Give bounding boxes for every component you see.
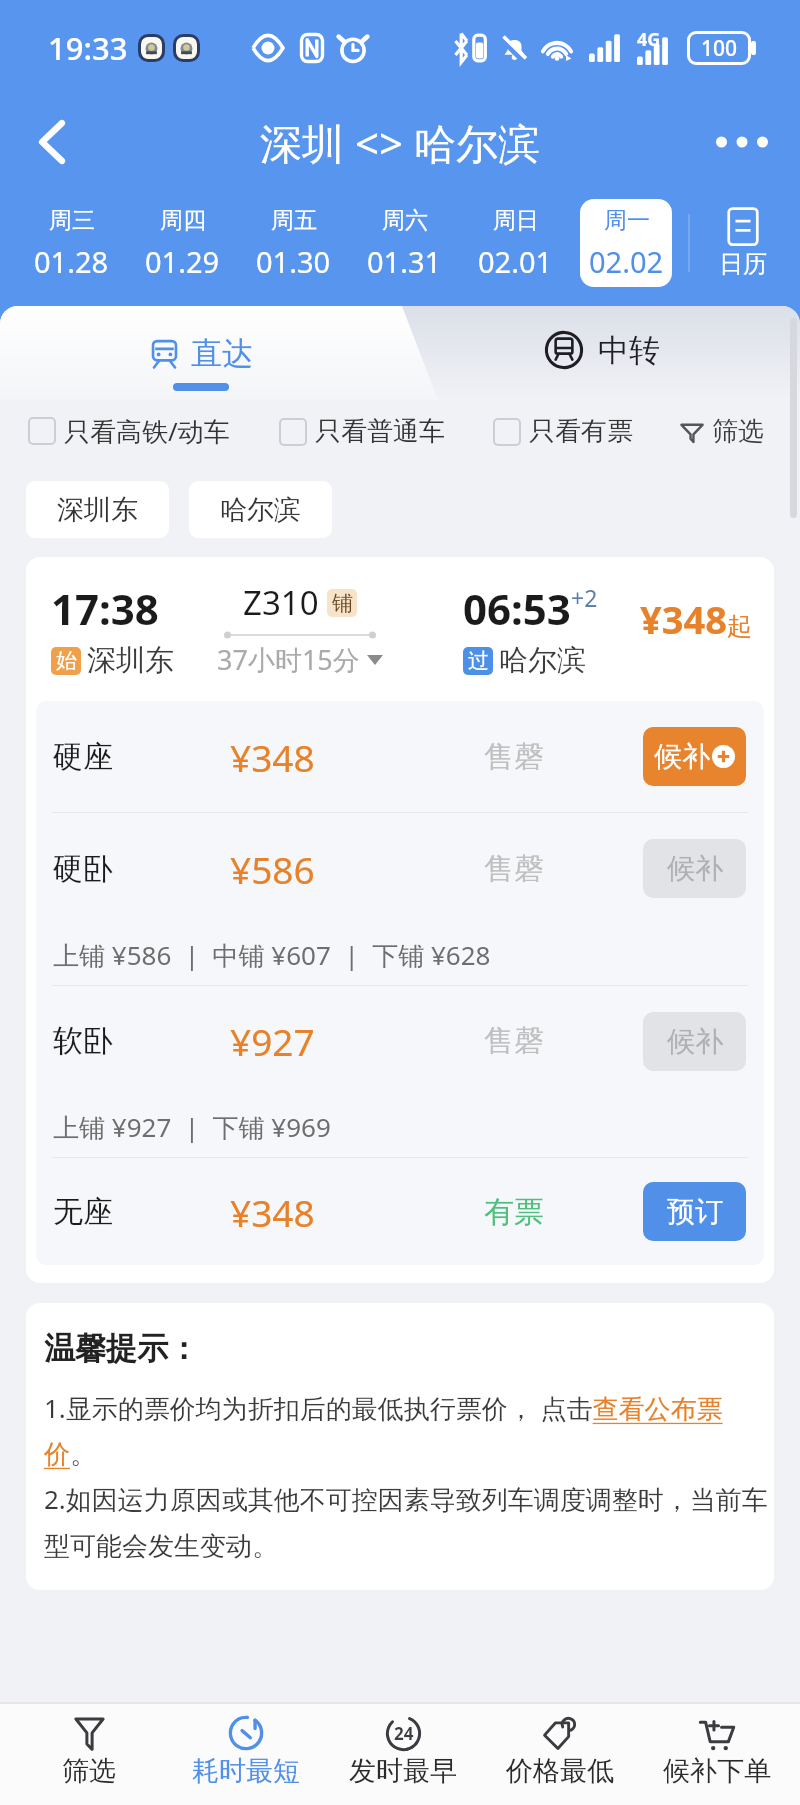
button[interactable]: Back xyxy=(18,108,86,176)
staticText: 01.29 xyxy=(145,242,220,281)
staticText: 周三 xyxy=(49,206,95,235)
staticText: 深圳 <> 哈尔滨 xyxy=(260,114,540,171)
staticText: 温馨提示： xyxy=(44,1329,199,1368)
staticText: 19:33 xyxy=(48,27,128,69)
button[interactable]: 软卧 xyxy=(36,986,764,1096)
button[interactable]: 价格最低 xyxy=(481,1704,638,1805)
staticText: 筛选 xyxy=(62,1754,116,1788)
staticText: 只看有票 xyxy=(529,415,633,448)
staticText: 发时最早 xyxy=(349,1754,457,1788)
staticText: 起 xyxy=(727,611,752,642)
button[interactable]: More options xyxy=(708,108,776,176)
staticText: 周五 xyxy=(271,206,317,235)
staticText: 周日 xyxy=(493,206,539,235)
staticText: 耗时最短 xyxy=(192,1754,300,1788)
staticText: 候补 xyxy=(667,1024,723,1059)
staticText: Z310 xyxy=(243,580,319,625)
staticText: 无座 xyxy=(53,1193,230,1231)
button[interactable]: 候补 xyxy=(643,727,746,786)
staticText: 哈尔滨 xyxy=(499,642,586,679)
button[interactable]: 中转 xyxy=(402,306,800,400)
staticText: ¥348 xyxy=(230,1187,484,1237)
staticText: 17:38 xyxy=(51,580,159,637)
button[interactable]: 耗时最短 xyxy=(167,1704,324,1805)
staticText: 4G xyxy=(637,27,661,52)
button[interactable]: 筛选 xyxy=(10,1704,167,1805)
staticText: 02.02 xyxy=(589,242,664,281)
button[interactable]: 周六 xyxy=(348,188,459,306)
staticText: 候补 xyxy=(667,851,723,886)
button[interactable]: 周三 xyxy=(15,188,126,306)
staticText: ¥348 xyxy=(640,593,727,645)
staticText: 硬卧 xyxy=(53,850,230,888)
button[interactable]: 候补 xyxy=(643,839,746,898)
staticText: 01.28 xyxy=(34,242,109,281)
button[interactable]: 周四 xyxy=(126,188,237,306)
button[interactable]: 筛选 xyxy=(680,415,800,448)
staticText: 候补 xyxy=(654,739,710,774)
staticText: 价格最低 xyxy=(506,1754,614,1788)
button[interactable]: 周一 xyxy=(570,188,681,306)
button[interactable]: 只看普通车 xyxy=(279,415,445,448)
button[interactable]: 哈尔滨 xyxy=(189,481,332,538)
staticText: 周一 xyxy=(604,206,650,235)
staticText: 周六 xyxy=(382,206,428,235)
staticText: 售磬 xyxy=(484,1022,643,1060)
staticText: 上铺 ¥927 | 下铺 ¥969 xyxy=(53,1109,331,1145)
staticText: 周四 xyxy=(160,206,206,235)
staticText: 100 xyxy=(701,34,738,63)
staticText: 06:53 xyxy=(463,580,571,637)
staticText: 只看普通车 xyxy=(315,415,445,448)
button[interactable]: 候补 xyxy=(643,1012,746,1071)
staticText: 直达 xyxy=(191,334,253,373)
button[interactable]: 周五 xyxy=(237,188,348,306)
staticText: ¥927 xyxy=(230,1016,484,1066)
button[interactable]: 预订 xyxy=(643,1182,746,1241)
staticText: 过 xyxy=(468,648,489,674)
staticText: 哈尔滨 xyxy=(220,493,301,527)
staticText: 软卧 xyxy=(53,1022,230,1060)
staticText: 筛选 xyxy=(712,415,764,448)
button[interactable]: 日历 xyxy=(694,188,792,306)
button[interactable]: 深圳东 xyxy=(26,481,169,538)
staticText: 候补下单 xyxy=(663,1754,771,1788)
staticText: 深圳东 xyxy=(57,493,138,527)
button[interactable]: 无座 xyxy=(36,1158,764,1265)
staticText: 售磬 xyxy=(484,850,643,888)
staticText: 01.30 xyxy=(256,242,331,281)
staticText: 24 xyxy=(394,1722,414,1745)
button[interactable]: 只看有票 xyxy=(493,415,633,448)
staticText: +2 xyxy=(571,582,598,613)
staticText: 有票 xyxy=(484,1193,643,1231)
staticText: 日历 xyxy=(719,249,767,279)
button[interactable]: 24 xyxy=(324,1704,481,1805)
button[interactable]: 只看高铁/动车 xyxy=(28,413,230,449)
staticText: 深圳东 xyxy=(87,642,174,679)
button[interactable]: 周日 xyxy=(459,188,570,306)
staticText: 预订 xyxy=(667,1194,723,1229)
staticText: 只看高铁/动车 xyxy=(64,413,230,449)
button[interactable]: 直达 xyxy=(0,306,402,400)
staticText: 铺 xyxy=(332,590,353,616)
staticText: 01.31 xyxy=(367,242,442,281)
staticText: 02.01 xyxy=(478,242,553,281)
button[interactable]: 候补下单 xyxy=(638,1704,795,1805)
staticText: 上铺 ¥586 | 中铺 ¥607 | 下铺 ¥628 xyxy=(53,937,491,973)
staticText: 硬座 xyxy=(53,738,230,776)
staticText: 37小时15分 xyxy=(217,641,360,678)
button[interactable]: 硬卧 xyxy=(36,813,764,924)
staticText: 1.显示的票价均为折扣后的最低执行票价， 点击查看公布票价。 2.如因运力原因或… xyxy=(44,1390,772,1562)
staticText: ¥586 xyxy=(230,844,484,894)
button[interactable]: 硬座 xyxy=(36,701,764,812)
staticText: 售磬 xyxy=(484,738,643,776)
staticText: 始 xyxy=(56,648,77,674)
staticText: ¥348 xyxy=(230,732,484,782)
staticText: 中转 xyxy=(598,331,660,370)
